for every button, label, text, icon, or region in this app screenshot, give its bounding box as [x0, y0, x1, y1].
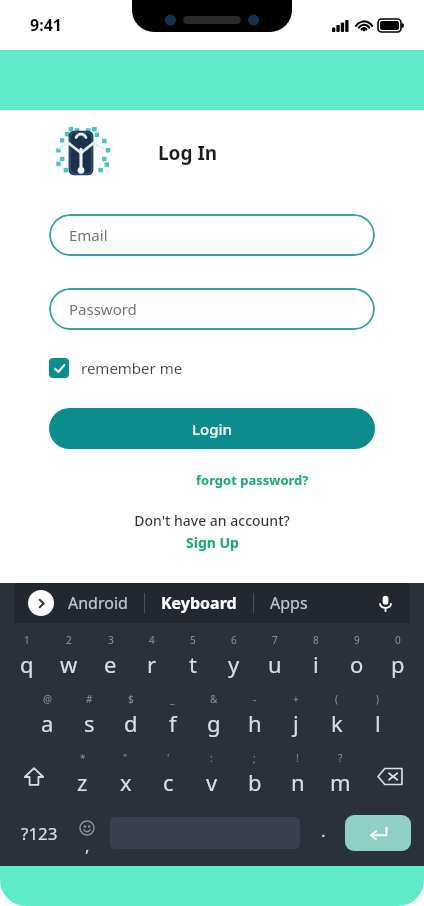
staticText: 9:41: [30, 14, 62, 36]
staticText: 4: [149, 633, 155, 647]
staticText: q: [20, 649, 34, 679]
staticText: 9: [354, 633, 360, 647]
staticText: -: [253, 692, 257, 706]
button[interactable]: !: [276, 747, 319, 806]
staticText: n: [291, 767, 305, 797]
staticText: $: [128, 692, 134, 706]
staticText: Log In: [158, 140, 218, 166]
button[interactable]: ;: [233, 747, 276, 806]
staticText: 2: [66, 633, 72, 647]
button[interactable]: 7: [254, 629, 295, 688]
staticText: !: [296, 751, 299, 765]
staticText: w: [60, 649, 78, 679]
staticText: :: [210, 751, 213, 765]
staticText: 7: [272, 633, 278, 647]
staticText: *: [80, 751, 86, 765]
button[interactable]: @: [26, 688, 68, 747]
staticText: Login: [192, 419, 232, 439]
button[interactable]: :: [190, 747, 233, 806]
button[interactable]: remember me: [49, 358, 183, 378]
staticText: p: [391, 649, 405, 679]
staticText: m: [330, 767, 351, 797]
button[interactable]: ?: [319, 747, 362, 806]
button[interactable]: ): [357, 688, 398, 747]
button[interactable]: Android: [68, 592, 128, 614]
button[interactable]: *: [61, 747, 104, 806]
button[interactable]: #: [68, 688, 110, 747]
button[interactable]: ?123: [10, 806, 68, 860]
staticText: u: [268, 649, 282, 679]
button[interactable]: Emoji: [68, 806, 106, 860]
staticText: 1: [24, 633, 30, 647]
button[interactable]: $: [110, 688, 152, 747]
staticText: Don't have an account?: [0, 511, 424, 530]
staticText: ;: [253, 751, 256, 765]
staticText: Password: [69, 299, 137, 319]
staticText: o: [350, 649, 364, 679]
staticText: k: [331, 708, 343, 738]
staticText: 0: [395, 633, 401, 647]
staticText: _: [170, 692, 175, 706]
staticText: ?: [338, 751, 343, 765]
button[interactable]: &: [193, 688, 234, 747]
staticText: 6: [231, 633, 237, 647]
staticText: b: [248, 767, 262, 797]
staticText: 3: [108, 633, 114, 647]
staticText: i: [313, 649, 319, 679]
staticText: 8: [313, 633, 319, 647]
staticText: t: [189, 649, 197, 679]
staticText: remember me: [81, 358, 183, 378]
staticText: d: [124, 708, 138, 738]
button[interactable]: Sign Up: [186, 533, 239, 552]
button[interactable]: 9: [336, 629, 377, 688]
button[interactable]: 6: [213, 629, 254, 688]
staticText: f: [169, 708, 177, 738]
staticText: g: [207, 708, 221, 738]
button[interactable]: Login: [49, 408, 375, 449]
button[interactable]: Apps: [270, 592, 308, 614]
staticText: s: [84, 708, 95, 738]
button[interactable]: Backspace: [362, 747, 418, 806]
button[interactable]: Keyboard: [161, 592, 237, 614]
staticText: ": [123, 751, 128, 765]
button[interactable]: 2: [48, 629, 90, 688]
staticText: #: [86, 692, 93, 706]
button[interactable]: 4: [131, 629, 172, 688]
button[interactable]: Voice input: [370, 588, 400, 618]
button[interactable]: 8: [295, 629, 336, 688]
button[interactable]: _: [152, 688, 193, 747]
button[interactable]: Password: [49, 288, 375, 330]
button[interactable]: 3: [90, 629, 131, 688]
button[interactable]: 1: [6, 629, 48, 688]
staticText: z: [77, 767, 88, 797]
staticText: @: [43, 692, 52, 706]
button[interactable]: Enter: [345, 815, 411, 851]
staticText: l: [375, 708, 381, 738]
staticText: c: [163, 767, 174, 797]
staticText: h: [248, 708, 262, 738]
button[interactable]: Expand: [28, 590, 54, 616]
button[interactable]: forgot password?: [196, 471, 309, 489]
button[interactable]: 0: [377, 629, 418, 688]
staticText: .: [321, 819, 326, 842]
button[interactable]: +: [275, 688, 316, 747]
button[interactable]: Shift: [6, 747, 61, 806]
button[interactable]: (: [316, 688, 357, 747]
button[interactable]: .: [304, 806, 342, 860]
button[interactable]: -: [234, 688, 275, 747]
staticText: (: [335, 692, 338, 706]
staticText: v: [206, 767, 218, 797]
staticText: j: [293, 708, 299, 738]
staticText: x: [120, 767, 132, 797]
button[interactable]: Email: [49, 214, 375, 256]
staticText: ': [167, 751, 170, 765]
button[interactable]: ": [104, 747, 147, 806]
staticText: ,: [85, 834, 90, 857]
button[interactable]: ': [147, 747, 190, 806]
button[interactable]: 5: [172, 629, 213, 688]
staticText: ?123: [21, 822, 58, 845]
staticText: r: [147, 649, 157, 679]
staticText: &: [210, 692, 218, 706]
staticText: 5: [190, 633, 196, 647]
